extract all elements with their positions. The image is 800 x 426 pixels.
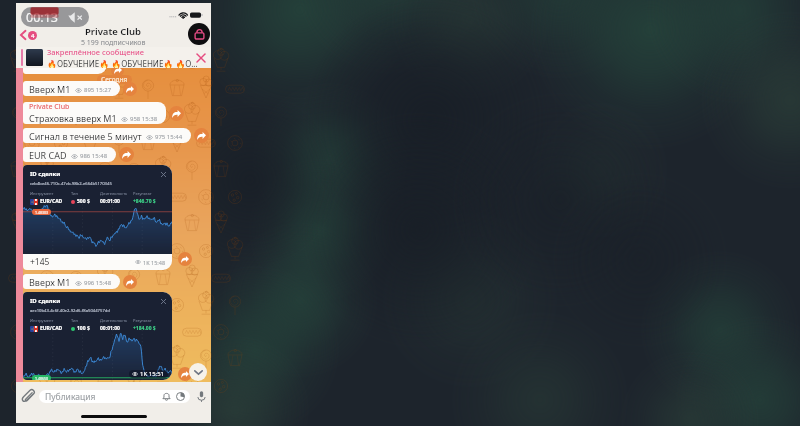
button[interactable]: Forward: [111, 64, 124, 77]
staticText: ceb4be46-710c-47vb-98b2-e664b5170345: [30, 181, 112, 187]
button[interactable]: Сегодня: [97, 75, 132, 84]
staticText: 975 15:44: [155, 133, 183, 141]
staticText: EUR/CAD: [40, 198, 63, 205]
button[interactable]: Публикация: [39, 390, 190, 403]
button[interactable]: Schedule message: [175, 391, 186, 402]
staticText: 1K 15:51: [140, 370, 165, 378]
staticText: Private Club: [29, 102, 70, 112]
staticText: 1K 15:48: [143, 259, 166, 266]
staticText: Сигнал в течение 5 минут: [29, 130, 142, 142]
staticText: Длительность: [100, 318, 128, 323]
staticText: EUR CAD: [29, 149, 67, 161]
button[interactable]: Forward: [178, 252, 192, 266]
staticText: 🔥ОБУЧЕНИЕ🔥 🔥ОБУЧЕНИЕ🔥 🔥О...: [47, 58, 198, 68]
staticText: Результат: [133, 191, 152, 196]
button[interactable]: Forward: [178, 367, 192, 381]
button[interactable]: Закреплённое сообщение: [16, 47, 211, 68]
button[interactable]: Вверх M1: [23, 274, 120, 289]
button[interactable]: Forward: [194, 128, 209, 143]
staticText: +184.00 $: [133, 325, 156, 332]
button[interactable]: Scroll to bottom: [189, 363, 207, 381]
staticText: 00:01:00: [100, 198, 120, 205]
staticText: Инструмент: [30, 191, 54, 196]
button[interactable]: Private Club: [23, 102, 166, 124]
staticText: Инструмент: [30, 318, 54, 323]
staticText: ID сделки: [30, 297, 61, 305]
staticText: Тип: [71, 318, 79, 323]
button[interactable]: Close pinned message: [194, 51, 208, 65]
button[interactable]: Forward: [119, 147, 134, 162]
staticText: 500 $: [77, 198, 90, 205]
staticText: aec10b43-4c6f-40e2-92d6-f8a5044757dd: [30, 308, 110, 314]
button[interactable]: Forward: [123, 82, 137, 96]
staticText: +846.70 $: [133, 198, 156, 205]
staticText: 996 15:48: [84, 279, 112, 287]
staticText: 00:13: [26, 9, 58, 26]
staticText: Длительность: [100, 191, 128, 196]
staticText: Результат: [133, 318, 152, 323]
button[interactable]: Stop screen recording: [21, 7, 89, 27]
button[interactable]: Close card: [159, 170, 167, 178]
button[interactable]: Forward: [123, 275, 137, 289]
staticText: ID сделки: [30, 170, 61, 178]
staticText: Сегодня: [101, 75, 128, 84]
button[interactable]: Forward: [169, 106, 184, 121]
staticText: Private Club: [85, 25, 142, 38]
staticText: EUR/CAD: [40, 325, 63, 332]
staticText: 5 199 подписчиков: [81, 38, 146, 48]
button[interactable]: Back: [18, 28, 39, 42]
button[interactable]: ID сделки: [23, 165, 172, 270]
staticText: Тип: [71, 191, 79, 196]
staticText: Страховка вверх M1: [29, 112, 117, 124]
staticText: 895 15:27: [84, 86, 112, 94]
staticText: +145: [30, 256, 50, 268]
staticText: 100 $: [77, 325, 90, 332]
button[interactable]: EUR CAD: [23, 147, 116, 162]
staticText: Вверх M1: [29, 83, 71, 95]
button[interactable]: Mute notifications: [161, 391, 172, 402]
staticText: Публикация: [45, 391, 96, 403]
staticText: Закреплённое сообщение: [47, 47, 145, 57]
button[interactable]: Вверх M1: [23, 81, 120, 96]
button[interactable]: ID сделки: [23, 292, 172, 380]
staticText: 958 15:38: [130, 115, 158, 123]
staticText: 1.48650: [35, 376, 48, 380]
button[interactable]: Attach file: [21, 389, 36, 404]
staticText: 4: [31, 32, 35, 40]
staticText: 00:01:00: [100, 325, 120, 332]
button[interactable]: Channel profile: [188, 23, 210, 45]
button[interactable]: Close card: [159, 297, 167, 305]
staticText: 986 15:48: [80, 152, 108, 160]
staticText: Вверх M1: [29, 276, 71, 288]
button[interactable]: Record voice message: [194, 389, 208, 403]
button[interactable]: Сигнал в течение 5 минут: [23, 128, 191, 143]
staticText: 1.48303: [35, 210, 48, 215]
